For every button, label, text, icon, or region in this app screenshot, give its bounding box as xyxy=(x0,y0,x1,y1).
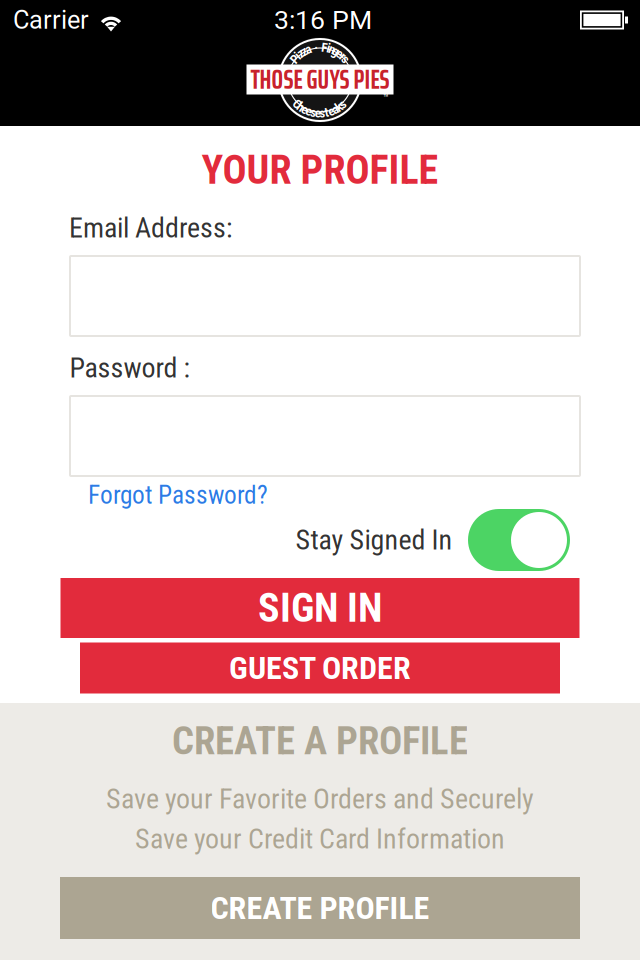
staticText: P xyxy=(291,51,299,67)
staticText: · xyxy=(314,39,318,55)
button[interactable]: Stay Signed In xyxy=(468,509,570,571)
button[interactable]: SIGN IN xyxy=(60,578,579,638)
staticText: THOSE GUYS PIES xyxy=(250,58,389,100)
staticText: Save your Favorite Orders and Securely xyxy=(106,783,534,815)
staticText: a xyxy=(332,101,338,117)
staticText: k xyxy=(336,99,342,115)
staticText: Carrier xyxy=(13,5,89,35)
staticText: s xyxy=(339,96,345,112)
staticText: C xyxy=(293,96,301,112)
button[interactable]: GUEST ORDER xyxy=(80,642,560,693)
staticText: s xyxy=(310,104,316,120)
staticText: r xyxy=(341,48,345,64)
staticText: e xyxy=(337,46,343,61)
staticText: Forgot Password? xyxy=(88,480,268,510)
staticText: YOUR PROFILE xyxy=(201,147,438,193)
staticText: SIGN IN xyxy=(258,585,382,631)
staticText: e xyxy=(328,103,334,119)
staticText: z xyxy=(298,45,304,61)
button[interactable]: Forgot Password? xyxy=(88,478,288,512)
staticText: e xyxy=(306,103,312,119)
staticText: n xyxy=(329,42,336,57)
staticText xyxy=(310,40,313,56)
staticText: GUEST ORDER xyxy=(229,649,411,687)
staticText: g xyxy=(333,43,340,59)
staticText: Save your Credit Card Information xyxy=(135,823,505,855)
button[interactable]: Password xyxy=(70,396,580,476)
staticText: t xyxy=(325,104,329,120)
staticText: 3:16 PM xyxy=(274,4,372,36)
staticText: h xyxy=(297,99,304,115)
staticText: i xyxy=(327,40,330,56)
staticText: Stay Signed In xyxy=(295,524,452,556)
staticText xyxy=(319,39,322,55)
staticText: CREATE A PROFILE xyxy=(172,718,468,764)
staticText: Password : xyxy=(69,352,190,384)
staticText: s xyxy=(343,51,349,67)
staticText: e xyxy=(315,105,321,121)
button[interactable]: CREATE PROFILE xyxy=(60,877,580,939)
staticText: e xyxy=(302,101,308,117)
staticText: ™ xyxy=(383,92,389,104)
staticText: z xyxy=(301,43,307,59)
staticText: Email Address: xyxy=(69,212,233,244)
button[interactable]: Email Address xyxy=(70,256,580,336)
staticText: s xyxy=(319,105,325,121)
staticText: F xyxy=(321,39,327,55)
staticText: i xyxy=(296,48,299,64)
staticText: CREATE PROFILE xyxy=(210,889,429,927)
staticText: a xyxy=(305,41,311,57)
